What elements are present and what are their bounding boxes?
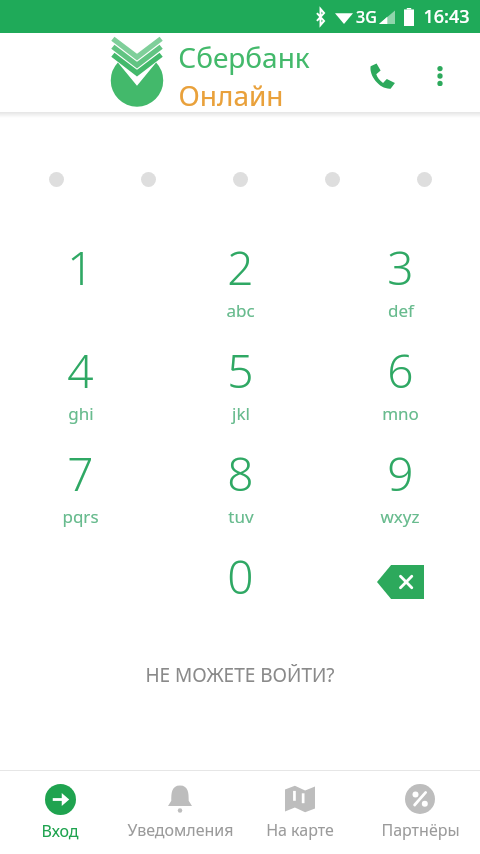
staticText: 6 bbox=[387, 339, 414, 402]
button[interactable]: 8 bbox=[160, 436, 320, 539]
staticText: 4 bbox=[67, 339, 94, 402]
staticText: 1 bbox=[67, 236, 94, 299]
button[interactable]: Вход bbox=[0, 771, 120, 854]
button[interactable]: 7 bbox=[0, 436, 160, 539]
staticText: Сбербанк bbox=[178, 38, 310, 76]
staticText: 2 bbox=[227, 236, 254, 299]
staticText: 9 bbox=[387, 442, 414, 505]
staticText: mno bbox=[382, 402, 419, 425]
button[interactable]: 1 bbox=[0, 230, 160, 333]
staticText: 7 bbox=[67, 442, 94, 505]
button[interactable]: 9 bbox=[320, 436, 480, 539]
staticText: Вход bbox=[41, 820, 79, 842]
button[interactable]: More options bbox=[417, 53, 463, 99]
button[interactable]: 0 bbox=[160, 539, 320, 639]
button[interactable]: 2 bbox=[160, 230, 320, 333]
button[interactable]: Backspace bbox=[320, 539, 480, 639]
staticText: ghi bbox=[68, 402, 94, 425]
staticText: НЕ МОЖЕТЕ ВОЙТИ? bbox=[145, 662, 335, 688]
staticText: Онлайн bbox=[178, 76, 284, 114]
staticText: def bbox=[388, 299, 414, 322]
button[interactable]: Call bbox=[358, 52, 406, 100]
staticText: Уведомления bbox=[127, 819, 234, 841]
button[interactable]: 3 bbox=[320, 230, 480, 333]
staticText: 5 bbox=[227, 339, 254, 402]
button[interactable]: 4 bbox=[0, 333, 160, 436]
button[interactable]: НЕ МОЖЕТЕ ВОЙТИ? bbox=[121, 650, 359, 700]
staticText: wxyz bbox=[380, 505, 420, 528]
button[interactable]: 6 bbox=[320, 333, 480, 436]
staticText: 8 bbox=[227, 442, 254, 505]
staticText: pqrs bbox=[62, 505, 99, 528]
button[interactable]: Уведомления bbox=[120, 771, 240, 854]
staticText: abc bbox=[226, 299, 255, 322]
staticText: 0 bbox=[227, 545, 254, 608]
staticText: Партнёры bbox=[381, 819, 460, 841]
staticText: jkl bbox=[232, 402, 250, 425]
staticText: 3G bbox=[356, 6, 377, 28]
staticText: На карте bbox=[266, 819, 334, 841]
staticText: 3 bbox=[387, 236, 414, 299]
button[interactable]: 5 bbox=[160, 333, 320, 436]
staticText: tuv bbox=[228, 505, 254, 528]
button[interactable]: Партнёры bbox=[360, 771, 480, 854]
button[interactable]: На карте bbox=[240, 771, 360, 854]
staticText: 16:43 bbox=[423, 4, 470, 29]
